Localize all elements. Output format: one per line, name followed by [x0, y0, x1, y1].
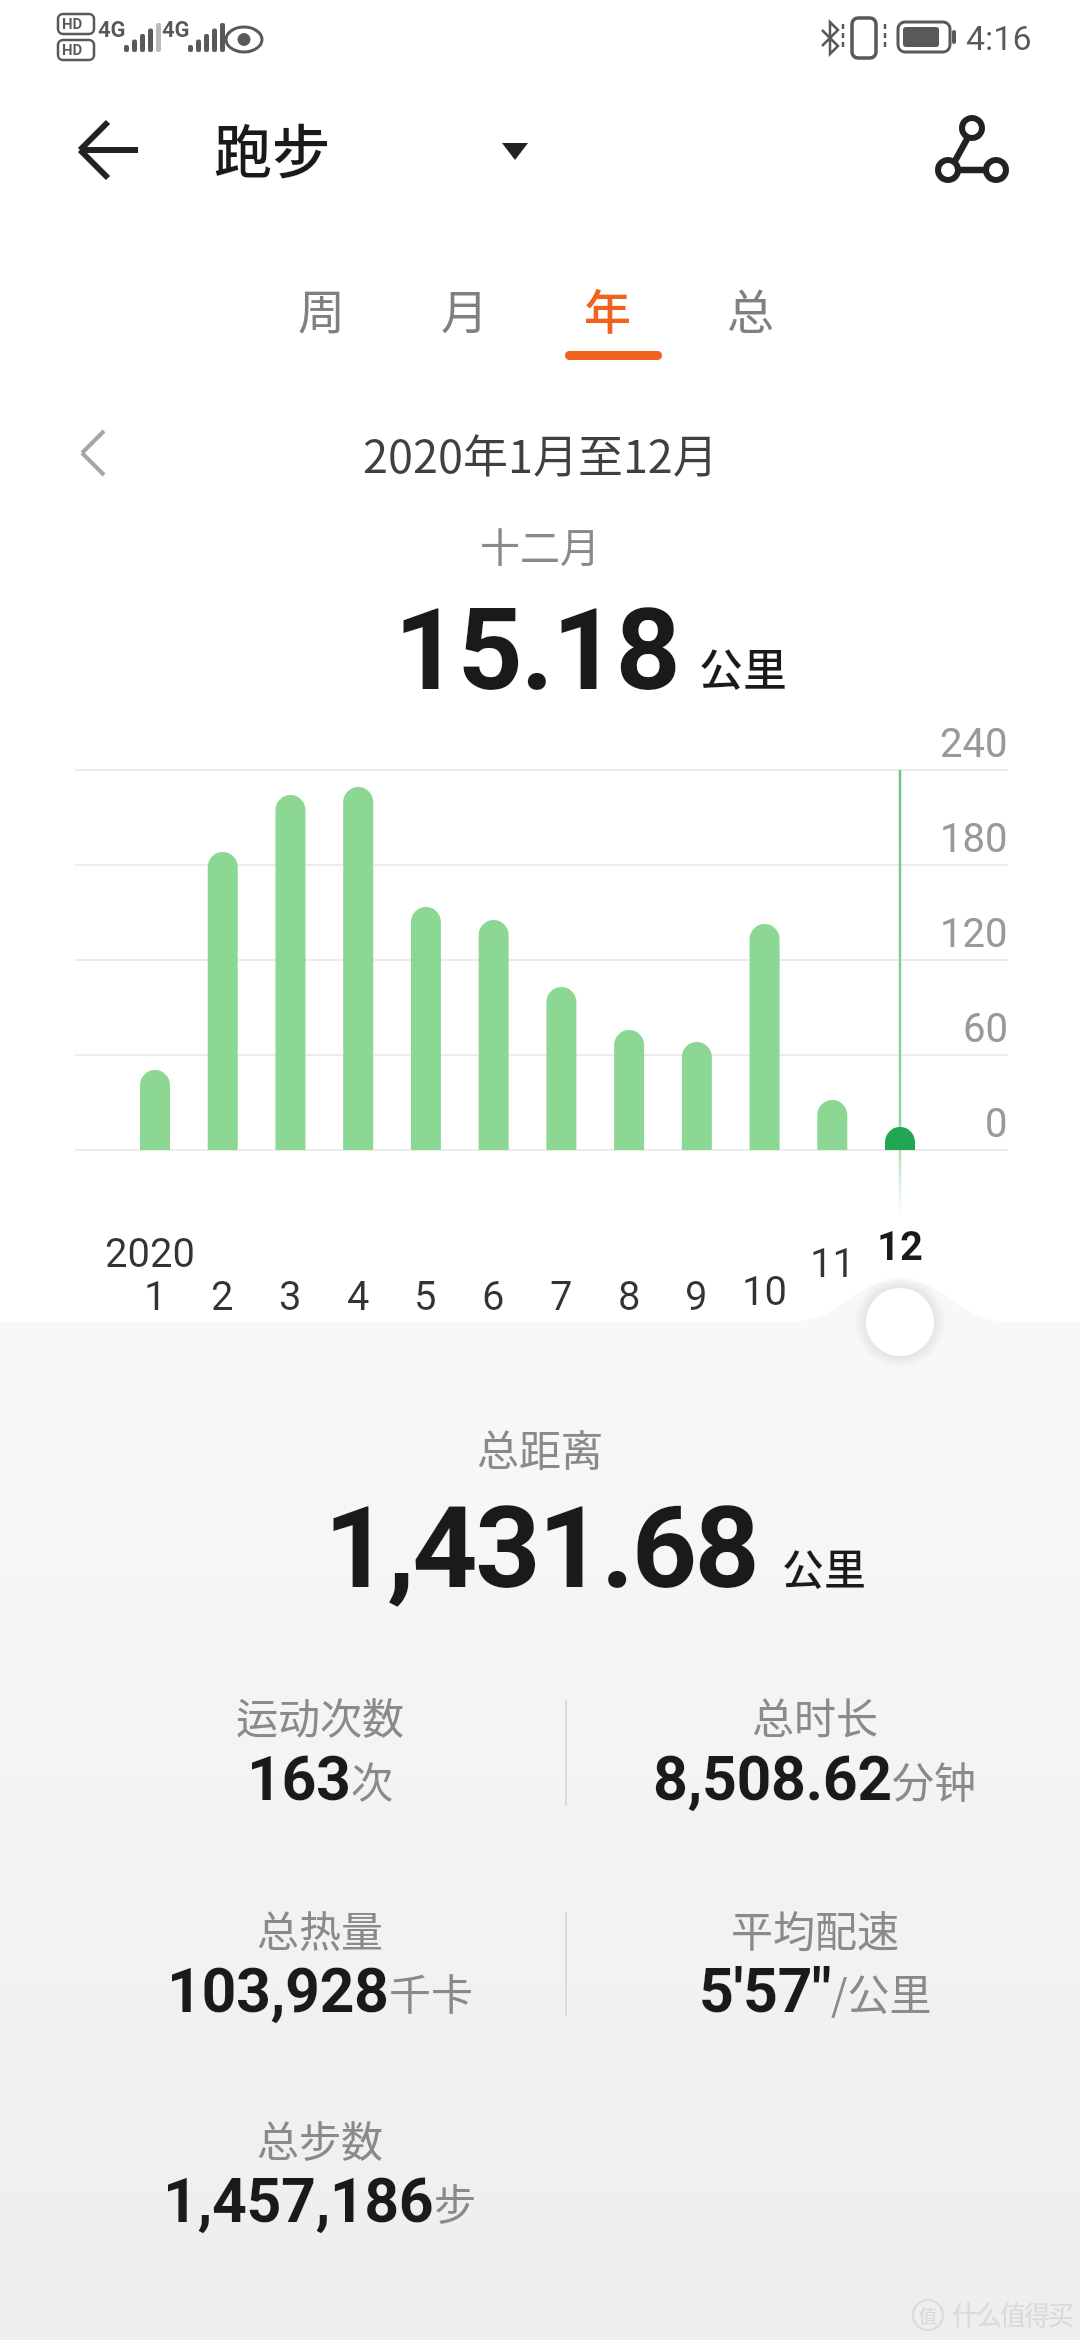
- button[interactable]: 163: [247, 1743, 394, 1814]
- staticText: 2: [211, 1273, 234, 1320]
- staticText: 4:16: [966, 18, 1032, 58]
- staticText: 千卡: [389, 1961, 474, 2022]
- staticText: HD: [62, 41, 83, 59]
- staticText: 11: [810, 1240, 855, 1287]
- staticText: 12: [877, 1223, 923, 1270]
- staticText: 值: [919, 2302, 937, 2328]
- staticText: 103,928: [167, 1955, 389, 2026]
- staticText: 2020: [105, 1230, 195, 1277]
- staticText: 8,508.62: [653, 1743, 892, 1814]
- staticText: 240: [940, 720, 1008, 767]
- button[interactable]: [858, 1280, 942, 1364]
- staticText: 分钟: [892, 1749, 977, 1810]
- staticText: 什么值得买: [952, 2295, 1073, 2333]
- staticText: 163: [247, 1743, 351, 1814]
- staticText: 7: [550, 1273, 573, 1320]
- staticText: 跑步: [214, 106, 331, 190]
- staticText: 总热量: [257, 1898, 384, 1959]
- staticText: /公里: [831, 1961, 932, 2022]
- button[interactable]: 月: [441, 274, 488, 342]
- staticText: 月: [441, 274, 488, 342]
- staticText: 公里: [699, 635, 787, 699]
- staticText: 总: [727, 274, 774, 342]
- staticText: 年: [584, 274, 631, 342]
- button[interactable]: 总: [727, 274, 774, 342]
- staticText: 十二月: [480, 516, 600, 574]
- staticText: 8: [618, 1273, 641, 1320]
- staticText: 1: [144, 1273, 167, 1320]
- staticText: 次: [351, 1749, 394, 1810]
- staticText: 平均配速: [731, 1898, 900, 1959]
- staticText: 2020年1月至12月: [363, 421, 718, 486]
- button[interactable]: 5'57": [699, 1955, 932, 2026]
- staticText: 15.18: [394, 583, 679, 717]
- staticText: 5'57": [699, 1955, 831, 2026]
- staticText: 公里: [782, 1536, 867, 1597]
- staticText: 总步数: [257, 2108, 384, 2169]
- button[interactable]: 1,457,186: [163, 2165, 477, 2236]
- staticText: 1,457,186: [163, 2165, 434, 2236]
- staticText: 4G: [162, 17, 190, 43]
- button[interactable]: [200, 98, 550, 198]
- button[interactable]: 8,508.62: [653, 1743, 977, 1814]
- staticText: 4: [347, 1273, 370, 1320]
- button[interactable]: [56, 413, 136, 493]
- staticText: 步: [434, 2171, 477, 2232]
- staticText: 6: [482, 1273, 505, 1320]
- staticText: 0: [985, 1100, 1008, 1147]
- staticText: 10: [742, 1268, 787, 1315]
- staticText: 总时长: [752, 1685, 879, 1746]
- staticText: 1,431.68: [324, 1481, 758, 1615]
- staticText: HD: [62, 15, 83, 33]
- staticText: 运动次数: [236, 1685, 405, 1746]
- staticText: 周: [298, 274, 345, 342]
- staticText: 4G: [98, 17, 126, 43]
- staticText: 60: [963, 1005, 1008, 1052]
- button[interactable]: 年: [584, 274, 631, 342]
- button[interactable]: 周: [298, 274, 345, 342]
- staticText: 5: [414, 1273, 437, 1320]
- staticText: 180: [940, 815, 1008, 862]
- staticText: 总距离: [477, 1417, 604, 1478]
- button[interactable]: 103,928: [167, 1955, 474, 2026]
- button[interactable]: [58, 108, 148, 194]
- staticText: 120: [940, 910, 1008, 957]
- staticText: 3: [279, 1273, 302, 1320]
- button[interactable]: [918, 98, 1022, 202]
- staticText: 9: [685, 1273, 708, 1320]
